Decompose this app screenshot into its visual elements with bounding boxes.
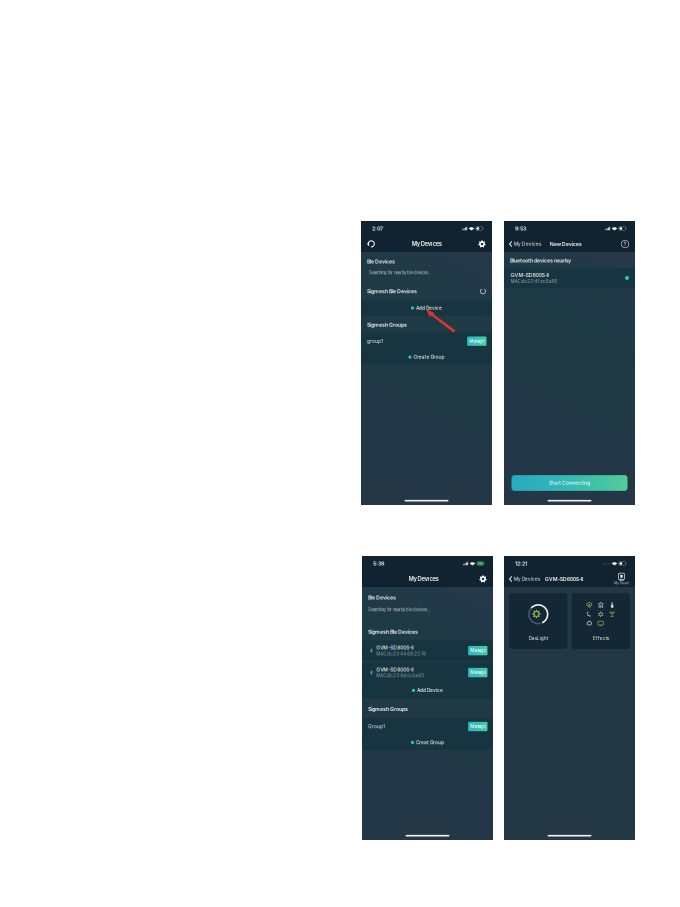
staticText: Creat Group — [416, 740, 444, 745]
staticText: Add Device — [416, 305, 442, 311]
button[interactable]: Start Connecting — [511, 475, 627, 491]
staticText: Start Connecting — [549, 480, 590, 486]
staticText: New Devices — [550, 241, 582, 247]
button[interactable]: group1 — [361, 333, 492, 349]
button[interactable]: GVM-SD800S-II — [362, 640, 493, 661]
staticText: 12:21 — [515, 560, 527, 567]
button[interactable]: GVM-SD800S-II — [362, 662, 493, 683]
staticText: Manage — [470, 670, 485, 675]
staticText: Sigmesh Ble Devices — [368, 629, 418, 635]
staticText: My Devices — [412, 240, 442, 247]
staticText: Add Device — [417, 688, 443, 693]
button[interactable]: GVM-SD800S-II — [504, 268, 635, 288]
button[interactable]: Add Device — [361, 300, 492, 316]
button[interactable]: DasLight — [509, 593, 567, 649]
button[interactable]: Manage — [468, 722, 487, 731]
button[interactable]: Creat Group — [362, 735, 493, 750]
staticText: Sigmesh Ble Devices — [367, 288, 417, 294]
staticText: Create Group — [414, 354, 445, 360]
staticText: Manage — [470, 648, 485, 653]
staticText: Searching for nearby ble devices... — [369, 270, 431, 275]
staticText: group1 — [367, 338, 383, 344]
staticText: My Devices — [514, 241, 542, 247]
button[interactable]: Manage — [468, 646, 487, 655]
button[interactable]: Add Device — [362, 683, 493, 698]
staticText: GVM-SD600S-II — [545, 576, 583, 582]
staticText: GVM-SD800S-II — [376, 645, 413, 651]
button[interactable]: Manage — [467, 336, 486, 346]
staticText: Ble Devices — [368, 594, 396, 601]
staticText: MAC:dc:23:4d:cc:5a:93 — [376, 673, 424, 678]
staticText: • • • — [602, 562, 610, 565]
staticText: GVM-SD800S-II — [376, 667, 413, 673]
button[interactable]: My Devices — [509, 241, 542, 247]
staticText: 5:39 — [373, 560, 384, 567]
staticText: GVM-SD800S-II — [510, 272, 548, 278]
staticText: Sigmesh Groups — [367, 322, 407, 328]
staticText: DasLight — [529, 635, 548, 641]
staticText: Ble Devices — [367, 258, 395, 265]
staticText: ? — [624, 241, 627, 247]
button[interactable]: Settings — [478, 240, 486, 248]
staticText: My Panel — [614, 581, 629, 585]
button[interactable]: My Devices — [509, 576, 541, 582]
staticText: MAC:dc:23:44:68:22:76 — [376, 651, 426, 656]
staticText: 2:07 — [372, 225, 383, 232]
staticText: Sigmesh Groups — [368, 706, 408, 712]
button[interactable]: Settings — [479, 575, 487, 583]
staticText: Searching for nearby ble devices... — [368, 607, 430, 612]
staticText: Effects — [593, 635, 609, 641]
button[interactable]: Support — [367, 240, 376, 248]
button[interactable]: My Panel — [613, 573, 629, 585]
staticText: My Devices — [408, 575, 438, 582]
staticText: MAC:dc:23:4f:cc:5a:90 — [510, 279, 557, 284]
button[interactable]: Manage — [468, 668, 487, 677]
staticText: Bluetooth devices nearby — [510, 257, 571, 264]
button[interactable]: Create Group — [361, 349, 492, 365]
button[interactable]: Group1 — [362, 718, 493, 735]
staticText: Manage — [470, 724, 485, 729]
staticText: Group1 — [368, 724, 385, 729]
button[interactable]: Help — [621, 240, 629, 248]
button[interactable]: Effects — [571, 593, 630, 649]
staticText: Manage — [469, 339, 484, 344]
staticText: 9:53 — [515, 225, 526, 232]
staticText: My Devices — [514, 576, 541, 582]
